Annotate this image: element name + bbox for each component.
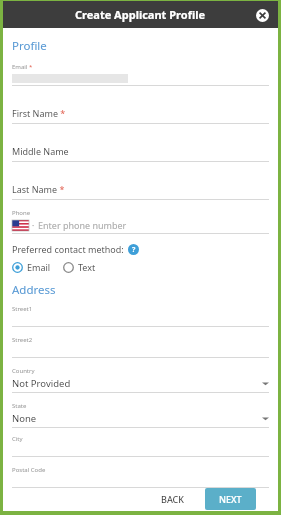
staticText: NEXT bbox=[219, 493, 242, 505]
staticText: · bbox=[32, 220, 35, 231]
button[interactable]: Street1 bbox=[12, 305, 269, 327]
button[interactable]: Country bbox=[12, 367, 269, 393]
staticText: BACK bbox=[161, 493, 185, 505]
staticText: Preferred contact method: bbox=[12, 243, 124, 255]
button[interactable]: Last Name * bbox=[12, 174, 269, 200]
staticText: Postal Code bbox=[12, 466, 46, 474]
staticText: Enter phone number bbox=[38, 219, 127, 231]
button[interactable]: First Name * bbox=[12, 98, 269, 124]
button[interactable]: Middle Name bbox=[12, 136, 269, 162]
staticText: City bbox=[12, 435, 23, 443]
staticText: None bbox=[12, 412, 37, 425]
button[interactable]: Close bbox=[253, 6, 271, 24]
staticText: Not Provided bbox=[12, 377, 71, 390]
staticText: First Name * bbox=[12, 107, 66, 119]
staticText: Last Name * bbox=[12, 183, 65, 195]
staticText: Country bbox=[12, 367, 35, 375]
staticText: Profile bbox=[12, 38, 47, 54]
staticText: State bbox=[12, 402, 27, 410]
button[interactable]: Text bbox=[63, 261, 96, 273]
staticText: Middle Name bbox=[12, 145, 69, 157]
button[interactable]: Help bbox=[128, 244, 139, 255]
staticText: Address bbox=[12, 282, 56, 298]
button[interactable]: NEXT bbox=[205, 488, 256, 510]
staticText: Create Applicant Profile bbox=[75, 7, 206, 22]
staticText: Phone bbox=[12, 209, 31, 217]
button[interactable]: City bbox=[12, 435, 269, 457]
staticText: Street2 bbox=[12, 336, 33, 344]
button[interactable]: Street2 bbox=[12, 336, 269, 358]
button[interactable]: Postal Code bbox=[12, 466, 269, 488]
button[interactable]: Email * bbox=[12, 63, 269, 86]
button[interactable]: State bbox=[12, 402, 269, 428]
button[interactable]: Phone bbox=[12, 209, 269, 234]
button[interactable]: BACK bbox=[151, 488, 195, 510]
staticText: ? bbox=[132, 245, 136, 255]
staticText: Street1 bbox=[12, 305, 33, 313]
button[interactable]: Email bbox=[12, 261, 51, 273]
staticText: Email * bbox=[12, 63, 33, 71]
staticText: Email bbox=[27, 261, 51, 273]
staticText: Text bbox=[78, 261, 96, 273]
